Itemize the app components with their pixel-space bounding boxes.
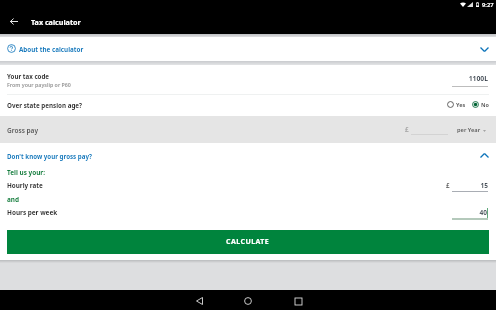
staticText: Hourly rate bbox=[7, 181, 43, 190]
staticText: Over state pension age? bbox=[7, 101, 83, 110]
button[interactable]: per Year, pay period bbox=[455, 120, 489, 138]
button[interactable]: Don't know your gross pay? bbox=[0, 148, 496, 164]
staticText: 15 bbox=[452, 181, 488, 190]
staticText: Tell us your: bbox=[7, 168, 45, 177]
staticText: About the calculator bbox=[19, 45, 84, 54]
button[interactable]: Tax code input, 1100L bbox=[450, 72, 490, 88]
button[interactable]: Collapse bbox=[477, 148, 491, 162]
staticText: per Year bbox=[457, 126, 481, 134]
button[interactable]: No bbox=[471, 100, 491, 110]
button[interactable]: Expand bbox=[477, 42, 491, 56]
staticText: From your payslip or P60 bbox=[7, 81, 71, 88]
staticText: Tax calculator bbox=[31, 17, 81, 27]
staticText: 9:27 bbox=[482, 1, 494, 9]
staticText: Hours per week bbox=[7, 208, 58, 217]
staticText: 40 bbox=[451, 208, 487, 217]
staticText: and bbox=[7, 195, 20, 204]
button[interactable]: Recent apps bbox=[286, 291, 310, 310]
staticText: Gross pay bbox=[7, 126, 38, 135]
button[interactable]: CALCULATE bbox=[7, 230, 489, 254]
staticText: Don't know your gross pay? bbox=[7, 152, 93, 160]
button[interactable]: Yes bbox=[446, 100, 466, 110]
staticText: Yes bbox=[456, 101, 466, 108]
button[interactable]: Home bbox=[236, 291, 260, 310]
button[interactable]: Back bbox=[187, 291, 211, 310]
staticText: £ bbox=[405, 125, 409, 134]
staticText: 1100L bbox=[448, 74, 488, 83]
staticText: CALCULATE bbox=[226, 237, 270, 247]
button[interactable]: About the calculator bbox=[0, 37, 496, 61]
button[interactable]: Navigate up bbox=[7, 14, 21, 28]
button[interactable]: Hours per week input, 40 bbox=[450, 206, 490, 221]
button[interactable]: Gross pay amount input bbox=[404, 120, 452, 138]
staticText: £ bbox=[446, 181, 450, 190]
staticText: Your tax code bbox=[7, 72, 50, 80]
button[interactable]: Hourly rate input, 15 bbox=[450, 179, 490, 194]
staticText: No bbox=[481, 101, 489, 108]
